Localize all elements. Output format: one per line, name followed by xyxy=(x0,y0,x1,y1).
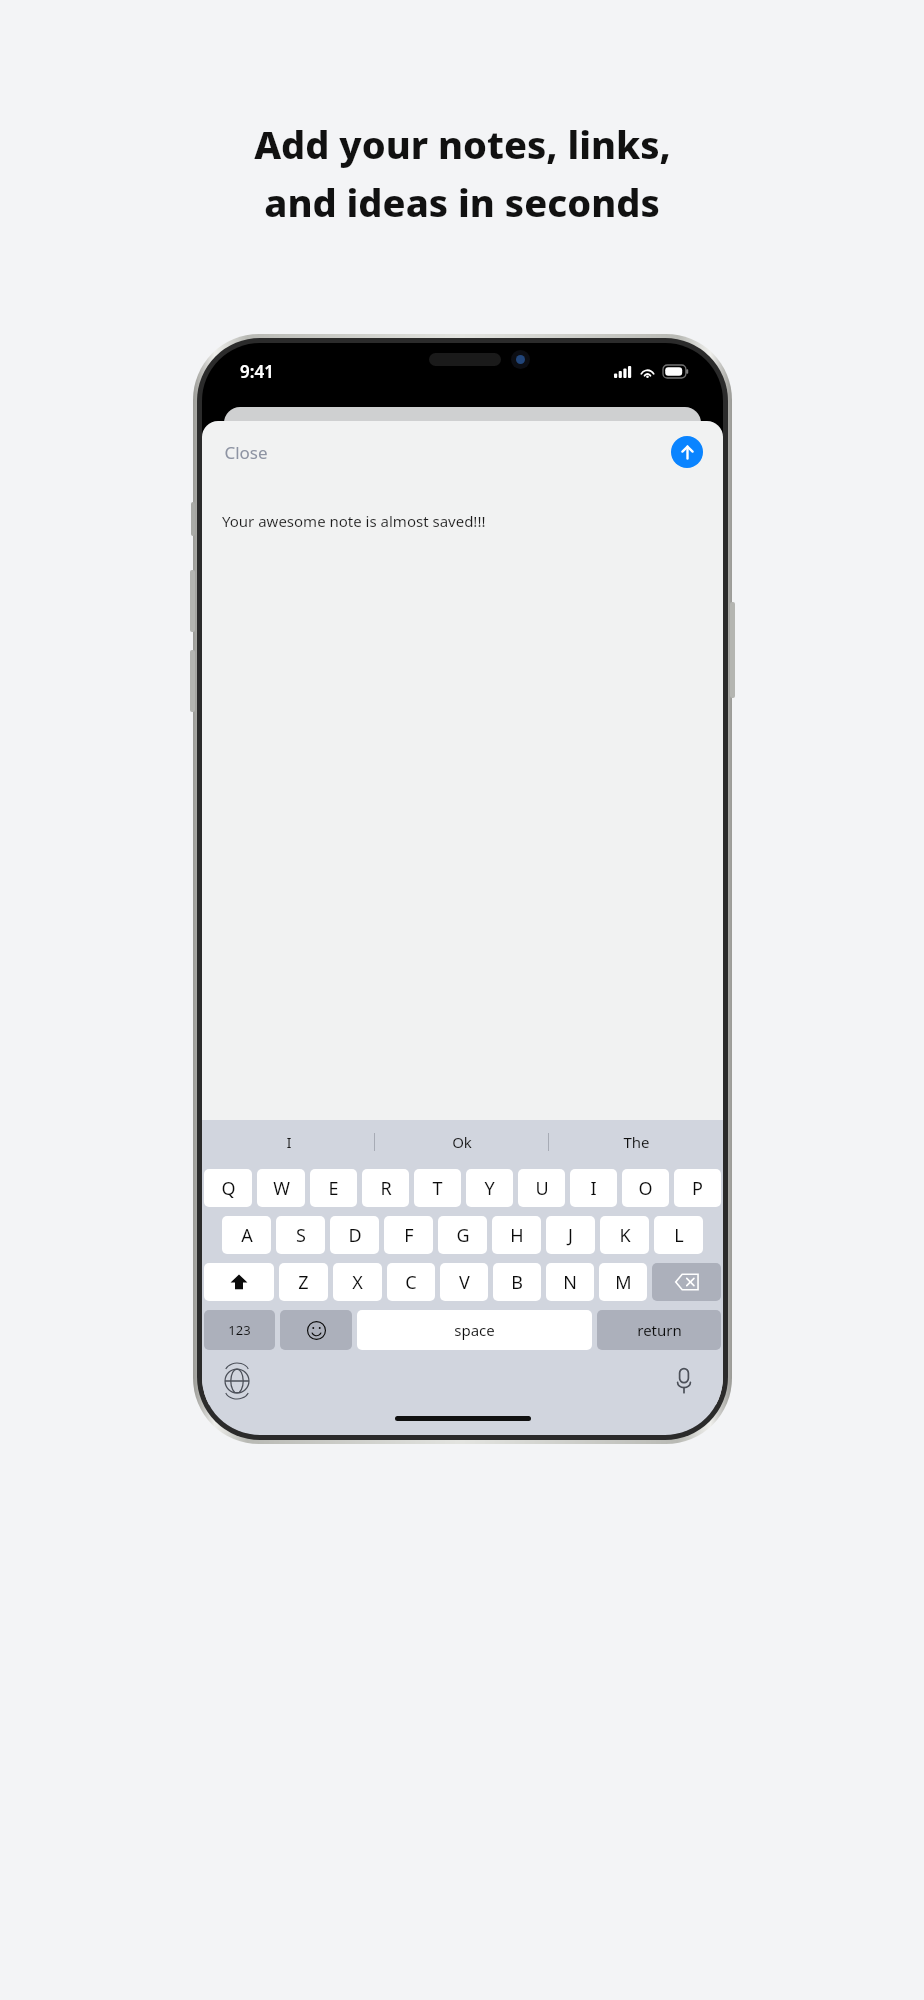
staticText: R xyxy=(380,1176,392,1201)
button[interactable]: V xyxy=(440,1263,488,1301)
staticText: Q xyxy=(221,1176,236,1201)
button[interactable]: Close xyxy=(214,435,278,470)
button[interactable]: Dictate xyxy=(667,1364,701,1398)
button[interactable]: R xyxy=(362,1169,409,1207)
staticText: W xyxy=(273,1176,290,1201)
button[interactable]: H xyxy=(492,1216,541,1254)
button[interactable]: F xyxy=(384,1216,433,1254)
button[interactable]: Change keyboard xyxy=(220,1364,254,1398)
button[interactable]: Z xyxy=(279,1263,328,1301)
staticText: E xyxy=(328,1176,339,1201)
staticText: P xyxy=(692,1176,703,1201)
button[interactable]: Send note xyxy=(671,436,703,468)
button[interactable]: X xyxy=(333,1263,382,1301)
staticText: A xyxy=(241,1223,253,1248)
staticText: Add your notes, links, xyxy=(254,118,671,170)
button[interactable]: 123 xyxy=(204,1310,275,1350)
button[interactable]: U xyxy=(518,1169,565,1207)
staticText: 123 xyxy=(228,1321,251,1339)
staticText: M xyxy=(615,1270,632,1295)
button[interactable]: M xyxy=(599,1263,647,1301)
staticText: Close xyxy=(224,441,268,464)
staticText: Ok xyxy=(452,1132,472,1152)
staticText: V xyxy=(459,1270,470,1295)
button[interactable]: Emoji xyxy=(280,1310,352,1350)
button[interactable]: space xyxy=(357,1310,592,1350)
button[interactable]: Ok xyxy=(375,1120,549,1164)
staticText: return xyxy=(637,1320,682,1340)
button[interactable]: The xyxy=(549,1120,723,1164)
button[interactable]: K xyxy=(600,1216,649,1254)
staticText: F xyxy=(404,1223,414,1248)
staticText: T xyxy=(432,1176,443,1201)
staticText: space xyxy=(454,1320,495,1340)
button[interactable]: I xyxy=(570,1169,617,1207)
button[interactable]: G xyxy=(438,1216,487,1254)
button[interactable]: D xyxy=(330,1216,379,1254)
button[interactable]: Y xyxy=(466,1169,513,1207)
button[interactable]: Shift xyxy=(204,1263,274,1301)
button[interactable]: W xyxy=(257,1169,305,1207)
button[interactable]: return xyxy=(597,1310,721,1350)
staticText: B xyxy=(511,1270,523,1295)
staticText: X xyxy=(352,1270,363,1295)
staticText: D xyxy=(348,1223,362,1248)
button[interactable]: I xyxy=(202,1120,375,1164)
button[interactable]: N xyxy=(546,1263,594,1301)
button[interactable]: J xyxy=(546,1216,595,1254)
staticText: K xyxy=(619,1223,631,1248)
staticText: O xyxy=(638,1176,653,1201)
button[interactable]: E xyxy=(310,1169,357,1207)
staticText: Y xyxy=(484,1176,495,1201)
button[interactable]: C xyxy=(387,1263,435,1301)
staticText: and ideas in seconds xyxy=(264,176,660,228)
staticText: C xyxy=(405,1270,417,1295)
staticText: L xyxy=(674,1223,684,1248)
staticText: Z xyxy=(298,1270,309,1295)
staticText: 9:41 xyxy=(240,360,274,383)
button[interactable]: B xyxy=(493,1263,541,1301)
staticText: J xyxy=(568,1223,573,1248)
staticText: I xyxy=(286,1132,292,1152)
staticText: N xyxy=(563,1270,577,1295)
staticText: The xyxy=(623,1132,650,1152)
button[interactable]: Backspace xyxy=(652,1263,721,1301)
button[interactable]: T xyxy=(414,1169,461,1207)
button[interactable]: S xyxy=(276,1216,325,1254)
button[interactable]: A xyxy=(222,1216,271,1254)
button[interactable]: O xyxy=(622,1169,669,1207)
staticText: I xyxy=(590,1176,597,1201)
button[interactable]: Q xyxy=(204,1169,252,1207)
staticText: S xyxy=(296,1223,306,1248)
staticText: U xyxy=(535,1176,549,1201)
button[interactable]: L xyxy=(654,1216,703,1254)
staticText: H xyxy=(510,1223,524,1248)
staticText: Your awesome note is almost saved!!! xyxy=(222,511,486,531)
button[interactable]: P xyxy=(674,1169,721,1207)
staticText: G xyxy=(456,1223,470,1248)
